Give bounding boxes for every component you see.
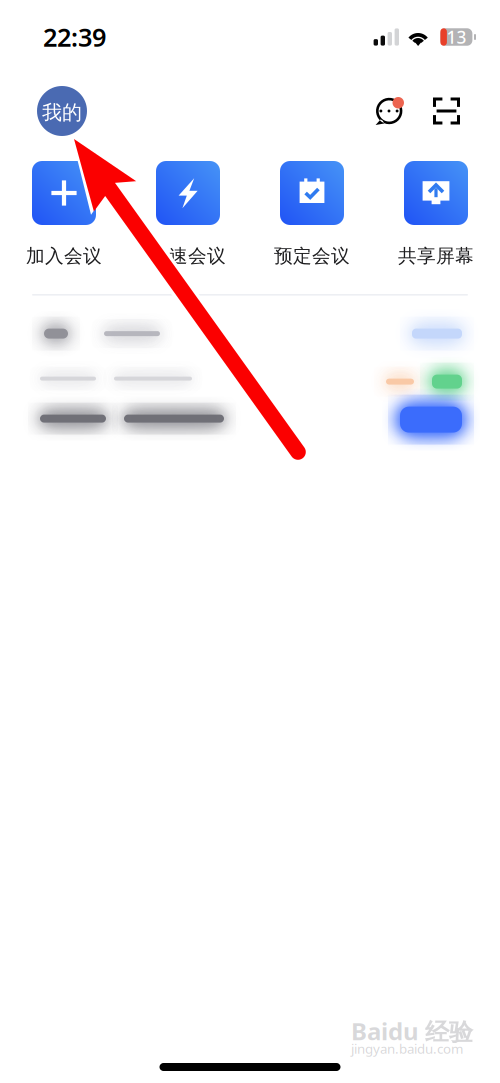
button[interactable]: 扫一扫 [433,97,460,124]
button[interactable]: 加入会议 [14,161,114,267]
staticText: Baidu 经验 [351,1015,473,1047]
button[interactable]: 共享屏幕 [386,161,486,267]
staticText: 13 [446,25,466,48]
button[interactable]: 快速会议 [138,161,238,267]
button[interactable]: 我的 [37,86,87,136]
button[interactable]: 预定会议 [262,161,362,267]
staticText: 预定会议 [274,244,350,267]
staticText: 加入会议 [26,244,102,267]
staticText: 快速会议 [150,244,226,267]
staticText: 我的 [42,100,82,125]
button[interactable]: 消息 [373,95,405,127]
staticText: jingyan.baidu.com [351,1040,463,1057]
staticText: 22:39 [43,20,106,54]
staticText: 共享屏幕 [398,244,474,267]
